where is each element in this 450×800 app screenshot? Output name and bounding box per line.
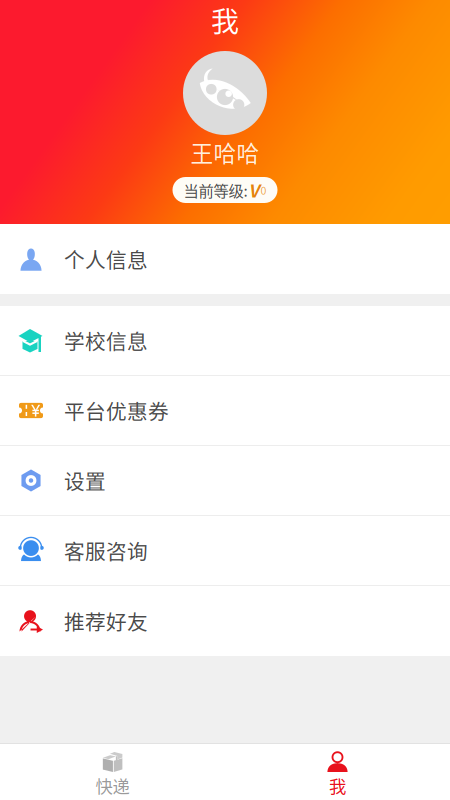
button[interactable]: 个人信息	[0, 224, 450, 294]
staticText: 客服咨询	[64, 535, 148, 565]
staticText: 王哈哈	[190, 136, 259, 168]
staticText: 0	[260, 182, 266, 198]
staticText: V	[248, 177, 259, 203]
button[interactable]: 我	[225, 744, 450, 800]
staticText: 快递	[95, 773, 129, 798]
button[interactable]: 设置	[0, 446, 450, 516]
staticText: 平台优惠券	[64, 395, 169, 425]
staticText: 学校信息	[64, 325, 148, 355]
staticText: 我	[211, 0, 239, 40]
button[interactable]: 学校信息	[0, 306, 450, 376]
button[interactable]: 平台优惠券	[0, 376, 450, 446]
button[interactable]: 客服咨询	[0, 516, 450, 586]
staticText: 我	[329, 773, 346, 798]
button[interactable]: 快递	[0, 744, 225, 800]
staticText: 当前等级:	[183, 179, 247, 201]
staticText: 推荐好友	[64, 606, 148, 636]
button[interactable]: 推荐好友	[0, 586, 450, 656]
staticText: 个人信息	[64, 244, 148, 274]
staticText: 设置	[64, 465, 106, 495]
